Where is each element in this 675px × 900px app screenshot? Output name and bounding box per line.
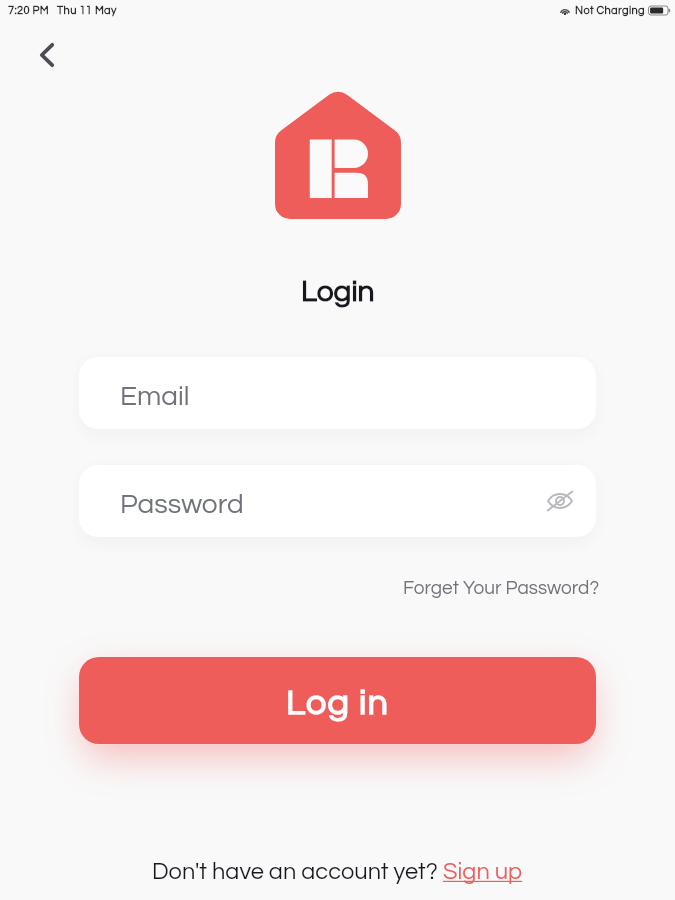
staticText: Forget Your Password? [403,578,600,598]
staticText: Password [120,490,244,519]
staticText: 7:20 PM [8,5,49,16]
button[interactable]: Email [79,357,596,429]
staticText: Sign up [443,860,523,884]
button[interactable]: Back [26,34,68,76]
button[interactable]: Sign up [443,860,523,884]
staticText: Log in [286,684,390,721]
staticText: Email [120,382,190,411]
button[interactable]: Log in [79,657,596,744]
staticText: Thu 11 May [57,5,117,16]
staticText: Don't have an account yet? [152,860,443,884]
staticText: Not Charging [575,5,645,16]
button[interactable]: Forget Your Password? [401,573,602,603]
button[interactable]: Show password [540,481,580,521]
button[interactable]: Password [79,465,596,537]
staticText: Login [301,276,375,307]
